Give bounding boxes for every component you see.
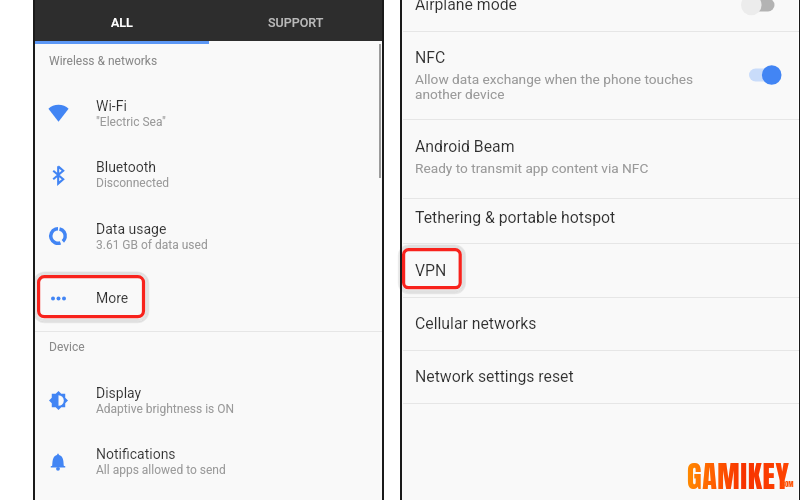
button[interactable]: Notifications	[34, 438, 382, 492]
staticText: GAMIKEY	[687, 454, 790, 494]
button[interactable]: Cellular networks	[401, 297, 798, 350]
button[interactable]: Display	[34, 377, 382, 431]
button[interactable]: NFC	[401, 31, 798, 119]
button[interactable]: Android Beam	[401, 119, 798, 198]
staticText: Android Beam	[415, 137, 515, 156]
button[interactable]: Airplane mode	[401, 0, 798, 31]
staticText: Display	[96, 385, 142, 401]
staticText: All apps allowed to send	[96, 463, 226, 477]
staticText: Wi-Fi	[96, 98, 127, 114]
button[interactable]: Bluetooth	[34, 151, 382, 205]
button[interactable]: More	[34, 282, 382, 322]
staticText: More	[96, 290, 129, 306]
staticText: NFC	[415, 48, 446, 67]
button[interactable]: VPN	[401, 243, 798, 298]
staticText: Allow data exchange when the phone touch…	[415, 71, 694, 102]
staticText: "Electric Sea"	[96, 115, 166, 129]
staticText: Adaptive brightness is ON	[96, 402, 235, 416]
staticText: Device	[49, 340, 85, 354]
button[interactable]: ALL	[34, 0, 209, 41]
staticText: Ready to transmit app content via NFC	[415, 160, 649, 176]
staticText: SUPPORT	[268, 15, 324, 30]
staticText: Wireless & networks	[49, 54, 158, 68]
staticText: Tethering & portable hotspot	[415, 208, 616, 227]
staticText: .COM	[780, 479, 794, 490]
staticText: VPN	[415, 261, 447, 280]
staticText: Cellular networks	[415, 314, 537, 333]
staticText: 3.61 GB of data used	[96, 238, 208, 252]
staticText: Notifications	[96, 446, 176, 462]
staticText: Data usage	[96, 221, 167, 237]
button[interactable]: Network settings reset	[401, 350, 798, 403]
staticText: ALL	[111, 15, 133, 30]
button[interactable]: Airplane mode toggle	[740, 0, 776, 16]
staticText: Disconnected	[96, 176, 170, 190]
staticText: Airplane mode	[415, 0, 517, 14]
button[interactable]: SUPPORT	[209, 0, 382, 41]
staticText: Bluetooth	[96, 159, 156, 175]
staticText: Network settings reset	[415, 367, 574, 386]
button[interactable]: Tethering & portable hotspot	[401, 195, 798, 240]
button[interactable]: Data usage	[34, 213, 382, 267]
button[interactable]: Wi-Fi	[34, 90, 382, 144]
button[interactable]: NFC toggle	[748, 64, 782, 86]
